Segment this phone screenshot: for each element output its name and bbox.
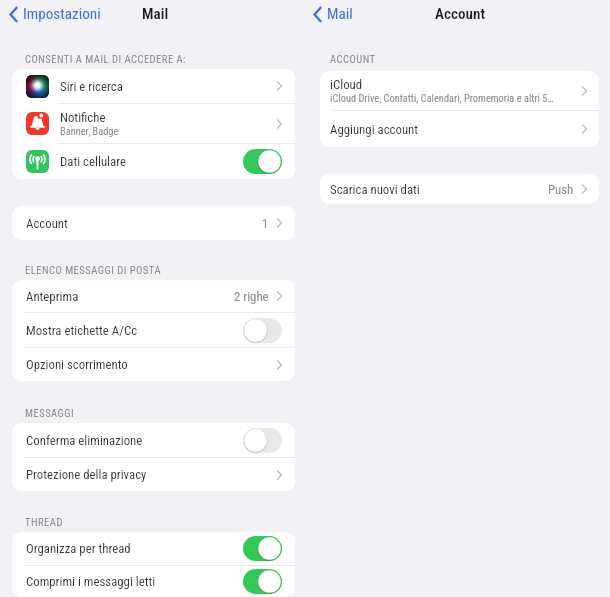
button[interactable]: Siri e ricerca [12, 69, 295, 103]
staticText: Banner, Badge [60, 125, 119, 137]
staticText: ACCOUNT [330, 53, 376, 65]
staticText: Scarica nuovi dati [330, 182, 420, 197]
button[interactable]: Account [12, 206, 295, 240]
staticText: Account [26, 216, 68, 231]
staticText: 2 righe [234, 289, 269, 304]
button[interactable]: Conferma eliminazione [12, 423, 295, 457]
button[interactable]: Indietro: Mail [312, 1, 353, 27]
button[interactable]: Aggiungi account [320, 111, 599, 147]
staticText: Organizza per thread [26, 541, 131, 556]
button[interactable]: Indietro: Impostazioni [8, 1, 101, 27]
button[interactable]: iCloud [320, 71, 599, 110]
button[interactable]: Attivo [243, 569, 284, 594]
staticText: Impostazioni [23, 5, 101, 23]
staticText: iCloud [330, 77, 363, 92]
button[interactable]: Comprimi i messaggi letti [12, 566, 295, 597]
staticText: Siri e ricerca [60, 79, 123, 94]
staticText: THREAD [25, 516, 63, 528]
staticText: Mostra etichette A/Cc [26, 323, 138, 338]
staticText: iCloud Drive, Contatti, Calendari, Prome… [330, 92, 554, 104]
staticText: Opzioni scorrimento [26, 357, 128, 372]
button[interactable]: Opzioni scorrimento [12, 348, 295, 381]
staticText: Mail [327, 5, 353, 23]
staticText: Dati cellulare [60, 154, 126, 169]
staticText: Protezione della privacy [26, 467, 147, 482]
staticText: Anteprima [26, 289, 79, 304]
button[interactable]: Scarica nuovi dati [320, 174, 599, 204]
staticText: Conferma eliminazione [26, 433, 143, 448]
button[interactable]: Attivo [243, 536, 284, 561]
staticText: CONSENTI A MAIL DI ACCEDERE A: [25, 53, 187, 65]
staticText: ELENCO MESSAGGI DI POSTA [25, 264, 161, 276]
button[interactable]: Anteprima [12, 280, 295, 312]
staticText: Aggiungi account [330, 122, 419, 137]
staticText: Push [548, 182, 574, 197]
button[interactable]: Mostra etichette A/Cc [12, 313, 295, 347]
button[interactable]: Organizza per thread [12, 532, 295, 565]
button[interactable]: Attivo [243, 149, 284, 174]
staticText: MESSAGGI [25, 407, 75, 419]
button[interactable]: Notifiche [12, 104, 295, 143]
button[interactable]: Protezione della privacy [12, 458, 295, 491]
staticText: Account [435, 5, 486, 23]
staticText: Comprimi i messaggi letti [26, 574, 156, 589]
staticText: Notifiche [60, 110, 106, 125]
staticText: 1 [262, 216, 269, 231]
button[interactable]: Dati cellulare [12, 144, 295, 179]
button[interactable]: Non attivo [243, 428, 284, 453]
staticText: Mail [142, 5, 169, 23]
button[interactable]: Non attivo [243, 318, 284, 343]
